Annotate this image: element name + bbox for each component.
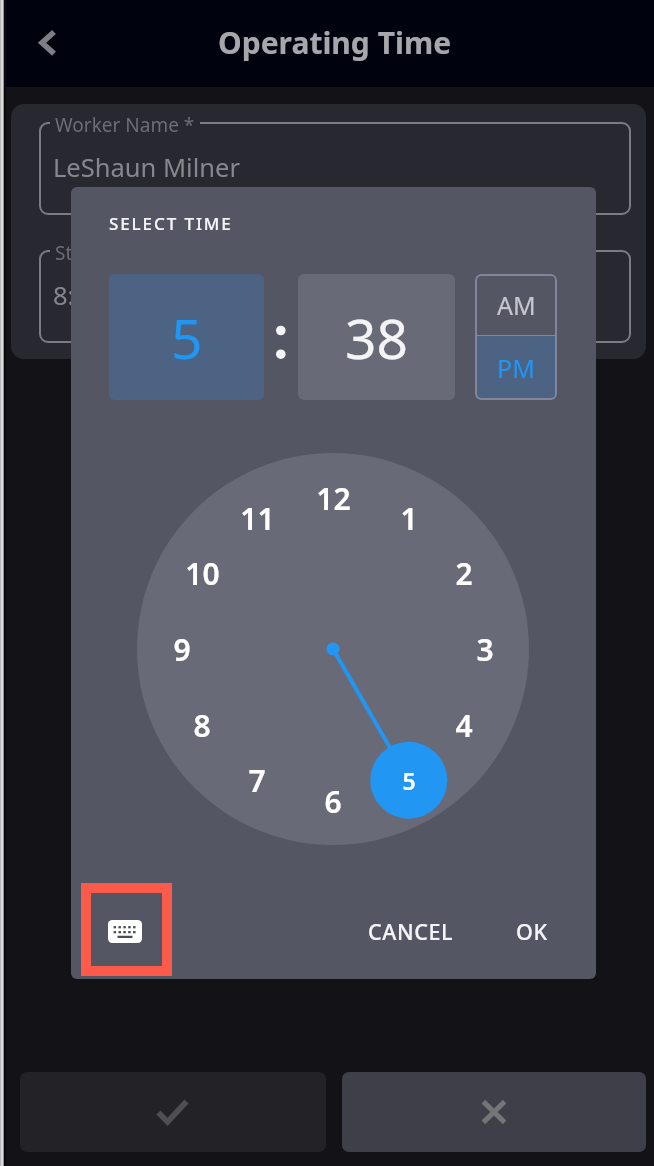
button[interactable]: PM — [475, 336, 557, 400]
button[interactable]: Confirm — [20, 1072, 326, 1152]
staticText: LeShaun Milner — [53, 150, 240, 185]
staticText: AM — [497, 288, 536, 322]
staticText: 11 — [240, 498, 275, 539]
button[interactable]: AM — [475, 274, 557, 335]
staticText: Start Time * — [55, 240, 162, 266]
staticText: 9 — [173, 629, 191, 670]
staticText: 5 — [402, 765, 416, 796]
button[interactable]: CANCEL — [354, 911, 467, 951]
staticText: 12 — [316, 478, 351, 519]
staticText: 7 — [248, 760, 266, 801]
button[interactable]: Cancel — [342, 1072, 646, 1152]
staticText: 2 — [455, 553, 473, 594]
staticText: 10 — [185, 553, 220, 594]
staticText: Operating Time — [218, 22, 452, 63]
staticText: SELECT TIME — [109, 212, 233, 235]
staticText: Worker Name * — [55, 112, 195, 138]
button[interactable]: OK — [494, 911, 570, 951]
button[interactable]: Back — [22, 18, 74, 70]
staticText: OK — [516, 917, 548, 946]
staticText: 5 — [171, 300, 203, 375]
staticText: 1 — [400, 498, 418, 539]
staticText: 38 — [345, 300, 408, 375]
staticText: 3 — [476, 629, 494, 670]
button[interactable]: Switch to text input — [81, 883, 172, 976]
staticText: 6 — [324, 781, 342, 822]
staticText: PM — [497, 351, 535, 385]
staticText: 4 — [455, 705, 473, 746]
button[interactable]: 38 — [298, 274, 455, 400]
staticText: CANCEL — [368, 917, 454, 946]
staticText: 8 — [193, 705, 211, 746]
staticText: 8:45 AM — [53, 278, 150, 313]
button[interactable]: 5 — [109, 274, 264, 400]
